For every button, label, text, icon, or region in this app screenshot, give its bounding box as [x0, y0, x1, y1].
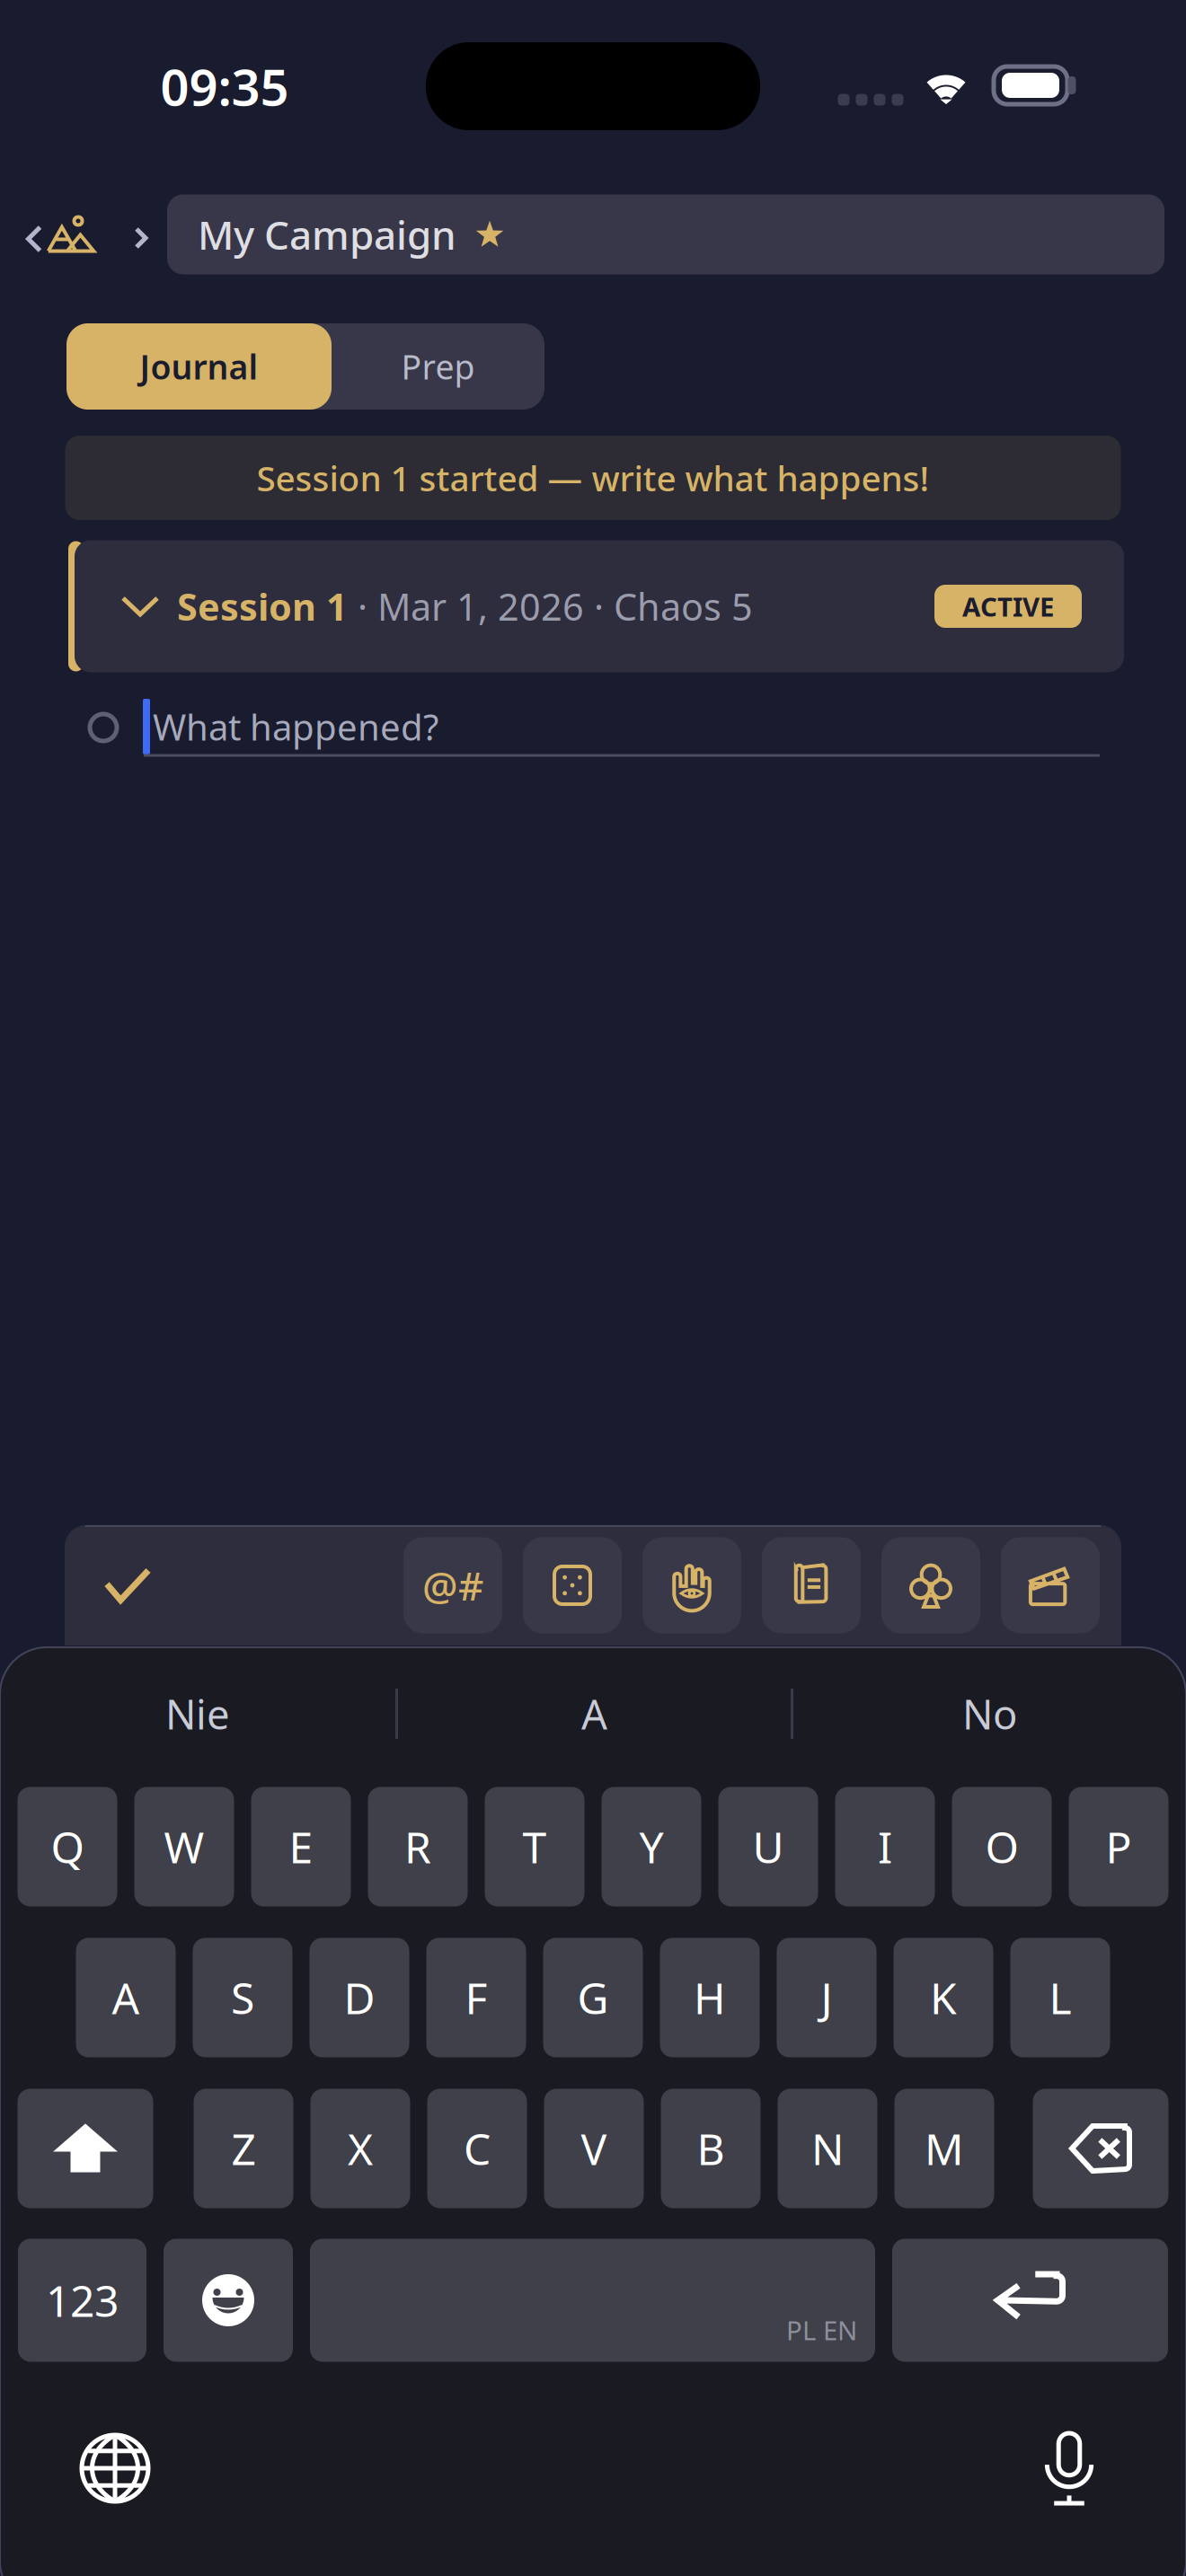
staticText: M	[925, 2120, 964, 2177]
staticText: ACTIVE	[962, 589, 1054, 624]
button[interactable]: Notes	[762, 1537, 861, 1633]
button[interactable]: Shift	[18, 2089, 153, 2208]
button[interactable]: Z	[194, 2089, 293, 2208]
button[interactable]: V	[544, 2089, 644, 2208]
staticText: I	[878, 1818, 892, 1875]
button[interactable]: R	[368, 1787, 468, 1906]
button[interactable]: Q	[18, 1787, 117, 1906]
button[interactable]: X	[310, 2089, 410, 2208]
staticText: · Mar 1, 2026 · Chaos 5	[348, 582, 753, 631]
button[interactable]: Done	[65, 1525, 190, 1645]
staticText: N	[811, 2120, 844, 2177]
staticText: R	[404, 1818, 431, 1875]
button[interactable]: S	[193, 1938, 292, 2057]
staticText: Y	[639, 1818, 664, 1875]
staticText: O	[985, 1818, 1018, 1875]
staticText: Prep	[401, 344, 475, 389]
button[interactable]: A	[398, 1664, 791, 1763]
button[interactable]: No	[793, 1664, 1186, 1763]
button[interactable]: G	[543, 1938, 643, 2057]
staticText: Nie	[165, 1687, 230, 1741]
button[interactable]: Scene	[1001, 1537, 1100, 1633]
button[interactable]: Space	[310, 2239, 875, 2362]
staticText: G	[577, 1969, 609, 2026]
button[interactable]: O	[952, 1787, 1052, 1906]
staticText: PL EN	[786, 2312, 857, 2347]
button[interactable]: P	[1069, 1787, 1168, 1906]
button[interactable]: B	[661, 2089, 761, 2208]
button[interactable]: E	[251, 1787, 351, 1906]
button[interactable]: U	[718, 1787, 818, 1906]
staticText: What happened?	[153, 703, 438, 750]
button[interactable]: T	[485, 1787, 584, 1906]
staticText: 123	[46, 2272, 119, 2329]
button[interactable]: Oracle	[642, 1537, 741, 1633]
button[interactable]: Emoji	[164, 2239, 293, 2362]
staticText: D	[344, 1969, 375, 2026]
button[interactable]: My Campaign	[167, 194, 1164, 274]
button[interactable]: @#	[403, 1537, 502, 1633]
staticText: Z	[231, 2120, 256, 2177]
staticText: B	[697, 2120, 725, 2177]
button[interactable]: H	[660, 1938, 760, 2057]
staticText: A	[112, 1969, 140, 2026]
button[interactable]: Roll dice	[523, 1537, 622, 1633]
staticText: F	[465, 1969, 487, 2026]
staticText: J	[821, 1969, 832, 2026]
staticText: E	[289, 1818, 313, 1875]
staticText: Journal	[140, 344, 258, 389]
staticText: H	[694, 1969, 726, 2026]
staticText: U	[752, 1818, 784, 1875]
button[interactable]: K	[894, 1938, 993, 2057]
button[interactable]: L	[1010, 1938, 1110, 2057]
button[interactable]: Dictate	[1021, 2410, 1118, 2527]
button[interactable]: Y	[602, 1787, 701, 1906]
staticText: V	[581, 2120, 607, 2177]
button[interactable]: 123	[18, 2239, 146, 2362]
staticText: No	[962, 1687, 1017, 1741]
button[interactable]: Journal	[66, 323, 332, 410]
staticText: @#	[422, 1559, 483, 1612]
button[interactable]: W	[134, 1787, 234, 1906]
button[interactable]: M	[894, 2089, 994, 2208]
button[interactable]: Switch keyboard	[58, 2412, 172, 2525]
button[interactable]: D	[310, 1938, 409, 2057]
button[interactable]: A	[76, 1938, 176, 2057]
staticText: X	[348, 2120, 373, 2177]
staticText: P	[1106, 1818, 1132, 1875]
button[interactable]: I	[835, 1787, 935, 1906]
staticText: My Campaign	[198, 208, 456, 261]
button[interactable]: N	[778, 2089, 877, 2208]
staticText: 09:35	[160, 53, 289, 120]
staticText: C	[464, 2120, 491, 2177]
staticText: Session 1 started — write what happens!	[257, 455, 929, 501]
staticText: T	[522, 1818, 547, 1875]
staticText: W	[164, 1818, 204, 1875]
staticText: K	[930, 1969, 957, 2026]
staticText: Session 1	[177, 582, 348, 631]
button[interactable]: Return	[892, 2239, 1168, 2362]
button[interactable]: Delete	[1033, 2089, 1168, 2208]
button[interactable]: F	[426, 1938, 526, 2057]
button[interactable]: Nie	[0, 1664, 395, 1763]
button[interactable]: Prep	[332, 323, 544, 410]
button[interactable]: Session 1	[65, 540, 1121, 672]
button[interactable]: J	[777, 1938, 876, 2057]
button[interactable]: C	[427, 2089, 527, 2208]
staticText: L	[1049, 1969, 1071, 2026]
staticText: Q	[51, 1818, 84, 1875]
staticText: A	[581, 1687, 607, 1741]
staticText: S	[231, 1969, 254, 2026]
button[interactable]: Deck	[881, 1537, 980, 1633]
